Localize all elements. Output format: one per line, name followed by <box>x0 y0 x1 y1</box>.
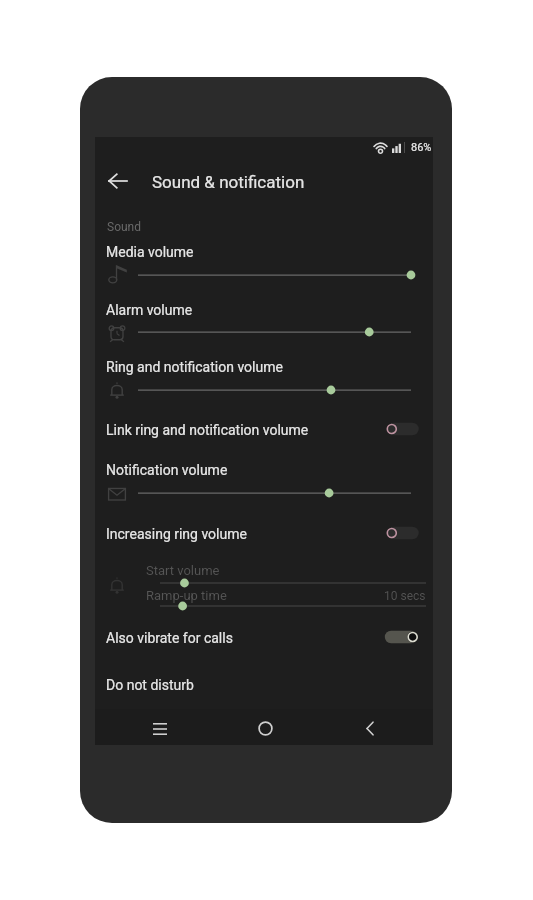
staticText: 86% <box>411 141 432 154</box>
button[interactable]: Notification volume <box>100 453 424 507</box>
button[interactable]: Increasing ring volume <box>100 515 429 551</box>
button[interactable]: Also vibrate for calls <box>100 619 429 655</box>
button[interactable]: Media volume <box>100 235 424 289</box>
staticText: 10 secs <box>384 589 426 603</box>
button[interactable]: Ring and notification volume <box>100 350 424 404</box>
staticText: Increasing ring volume <box>106 526 247 542</box>
button[interactable]: Recent apps <box>130 712 190 745</box>
staticText: Ramp-up time <box>146 588 227 603</box>
staticText: Sound <box>107 220 141 234</box>
staticText: Link ring and notification volume <box>106 422 309 438</box>
staticText: Alarm volume <box>106 302 193 318</box>
button[interactable]: Alarm volume <box>100 293 424 346</box>
staticText: Notification volume <box>106 462 228 478</box>
staticText: Media volume <box>106 244 194 260</box>
button[interactable]: Home <box>235 712 295 745</box>
button[interactable]: Do not disturb <box>100 666 424 702</box>
staticText: Start volume <box>146 563 220 578</box>
button[interactable]: Link ring and notification volume <box>100 411 429 447</box>
button[interactable]: Back <box>103 166 133 196</box>
staticText: Ring and notification volume <box>106 359 283 375</box>
staticText: Also vibrate for calls <box>106 630 233 646</box>
button[interactable]: Back <box>340 712 400 745</box>
staticText: Do not disturb <box>106 677 194 693</box>
staticText: Sound & notification <box>152 172 305 192</box>
